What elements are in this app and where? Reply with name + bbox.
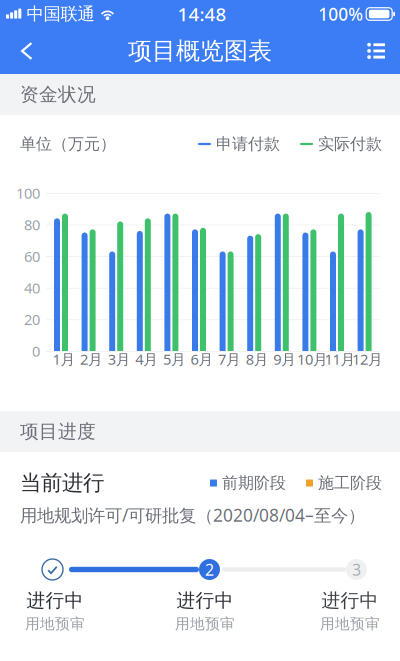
staticText: 1月 — [52, 349, 75, 369]
staticText: 项目进度 — [20, 420, 96, 443]
staticText: 实际付款 — [318, 134, 382, 154]
staticText: 进行中 — [321, 589, 378, 612]
staticText: 8月 — [246, 349, 269, 369]
staticText: 用地规划许可/可研批复（2020/08/04–至今） — [20, 503, 365, 526]
staticText: 60 — [24, 246, 40, 266]
staticText: 项目概览图表 — [128, 36, 272, 66]
staticText: 进行中 — [26, 589, 83, 612]
staticText: 用地预审 — [175, 615, 235, 633]
staticText: 80 — [24, 215, 40, 234]
staticText: 3 — [352, 559, 361, 580]
staticText: 进行中 — [176, 589, 233, 612]
staticText: 10月 — [297, 349, 328, 369]
staticText: 0 — [32, 341, 40, 361]
staticText: 6月 — [190, 349, 213, 369]
button[interactable]: 返回 — [0, 28, 44, 74]
staticText: 40 — [24, 278, 40, 298]
staticText: 2 — [205, 559, 214, 580]
button[interactable]: 列表 — [353, 28, 400, 74]
staticText: 4月 — [135, 349, 158, 369]
staticText: 前期阶段 — [222, 473, 286, 493]
staticText: 11月 — [324, 349, 355, 369]
staticText: 2月 — [80, 349, 103, 369]
staticText: 施工阶段 — [318, 473, 382, 493]
staticText: 用地预审 — [320, 615, 380, 633]
staticText: 单位（万元） — [20, 134, 116, 154]
staticText: 5月 — [163, 349, 186, 369]
staticText: 100% — [318, 2, 363, 25]
staticText: 14:48 — [177, 2, 226, 26]
staticText: 7月 — [218, 349, 241, 369]
staticText: 9月 — [273, 349, 296, 369]
staticText: 100 — [16, 183, 40, 203]
staticText: 20 — [24, 310, 40, 329]
staticText: 当前进行 — [20, 470, 104, 496]
staticText: 申请付款 — [216, 134, 280, 154]
staticText: 3月 — [108, 349, 131, 369]
staticText: 中国联通 — [26, 3, 94, 25]
staticText: 用地预审 — [25, 615, 85, 633]
staticText: 资金状况 — [20, 83, 96, 106]
staticText: 12月 — [352, 349, 383, 369]
